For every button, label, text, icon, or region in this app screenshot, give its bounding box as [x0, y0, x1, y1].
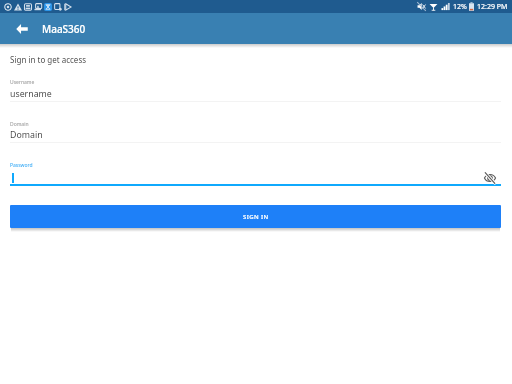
staticText: MaaS360 — [42, 22, 86, 36]
button[interactable]: Back — [11, 18, 33, 40]
button[interactable]: SIGN IN — [10, 205, 501, 228]
button[interactable]: Show password — [480, 168, 500, 188]
staticText: username — [10, 88, 52, 100]
staticText: Password — [10, 162, 33, 169]
staticText: 12:29 PM — [477, 2, 508, 12]
staticText: 12% — [453, 2, 467, 12]
button[interactable]: Username — [10, 74, 501, 102]
button[interactable]: Password — [10, 157, 501, 186]
staticText: Domain — [10, 129, 43, 141]
staticText: Domain — [10, 121, 29, 128]
staticText: Username — [10, 79, 35, 86]
staticText: SIGN IN — [243, 213, 269, 221]
button[interactable]: Domain — [10, 116, 501, 143]
staticText: Sign in to get access — [10, 54, 87, 65]
